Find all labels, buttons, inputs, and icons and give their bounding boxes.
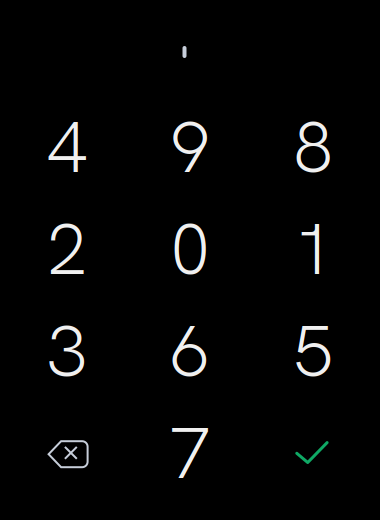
button[interactable]: 6: [128, 300, 251, 402]
staticText: 8: [293, 100, 333, 194]
button[interactable]: 0: [128, 198, 251, 300]
button[interactable]: 7: [128, 402, 251, 504]
staticText: 0: [170, 202, 210, 296]
button[interactable]: Confirm passcode: [251, 402, 374, 504]
staticText: 1: [293, 202, 333, 296]
button[interactable]: Delete: [5, 402, 128, 504]
staticText: 2: [47, 202, 87, 296]
button[interactable]: 8: [251, 96, 374, 198]
staticText: 7: [170, 406, 210, 500]
button[interactable]: 2: [5, 198, 128, 300]
staticText: 9: [170, 100, 210, 194]
staticText: 4: [47, 100, 87, 194]
button[interactable]: 3: [5, 300, 128, 402]
staticText: 6: [170, 304, 210, 398]
button[interactable]: 1: [251, 198, 374, 300]
button[interactable]: 5: [251, 300, 374, 402]
button[interactable]: 4: [5, 96, 128, 198]
staticText: 3: [47, 304, 87, 398]
button[interactable]: 9: [128, 96, 251, 198]
staticText: 5: [293, 304, 333, 398]
